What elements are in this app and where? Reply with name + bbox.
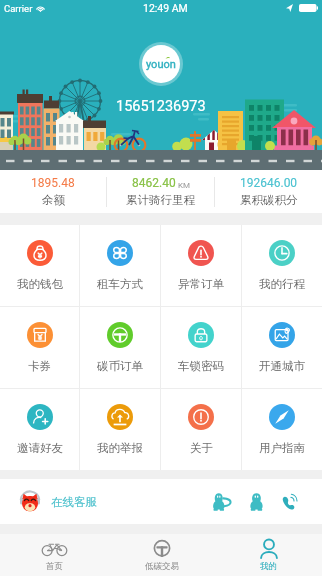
button[interactable]: 我的钱包 [0, 225, 79, 306]
button[interactable]: 1895.48 [0, 176, 106, 207]
button[interactable]: 在线客服 [20, 490, 97, 513]
button[interactable]: 我的举报 [80, 389, 160, 470]
button[interactable]: 8462.40 [107, 176, 214, 207]
staticText: 邀请好友 [17, 441, 63, 455]
staticText: 我的行程 [259, 277, 305, 291]
staticText: 在线客服 [51, 495, 97, 509]
staticText: 首页 [46, 561, 63, 572]
button[interactable]: Call [281, 492, 301, 512]
staticText: 累计骑行里程 [126, 193, 195, 207]
button[interactable]: QQ [248, 493, 265, 511]
button[interactable]: 车锁密码 [161, 307, 241, 388]
staticText: 192646.00 [240, 176, 298, 190]
button[interactable]: 192646.00 [215, 176, 322, 207]
button[interactable]: 用户指南 [242, 389, 322, 470]
button[interactable]: 我的行程 [242, 225, 322, 306]
button[interactable]: QQ group [211, 493, 232, 511]
staticText: 累积碳积分 [240, 193, 298, 207]
staticText: 我的 [260, 561, 277, 572]
staticText: 租车方式 [97, 277, 143, 291]
button[interactable]: 碳币订单 [80, 307, 160, 388]
staticText: 12:49 AM [143, 2, 188, 14]
staticText: 开通城市 [259, 359, 305, 373]
staticText: 1895.48 [31, 176, 75, 190]
staticText: 余额 [42, 193, 65, 207]
button[interactable]: 开通城市 [242, 307, 322, 388]
staticText: 异常订单 [178, 277, 224, 291]
staticText: KM [176, 181, 190, 190]
button[interactable]: 首页 [0, 534, 108, 576]
staticText: 15651236973 [116, 98, 206, 115]
button[interactable]: 低碳交易 [108, 534, 215, 576]
staticText: 用户指南 [259, 441, 305, 455]
button[interactable]: 卡券 [0, 307, 79, 388]
staticText: 卡券 [28, 359, 51, 373]
staticText: Carrier [4, 3, 33, 14]
staticText: 低碳交易 [145, 561, 179, 572]
button[interactable]: 邀请好友 [0, 389, 79, 470]
staticText: 车锁密码 [178, 359, 224, 373]
staticText: 我的举报 [97, 441, 143, 455]
button[interactable]: 关于 [161, 389, 241, 470]
button[interactable]: 异常订单 [161, 225, 241, 306]
staticText: youon [146, 58, 176, 71]
button[interactable]: 租车方式 [80, 225, 160, 306]
staticText: 8462.40 [132, 176, 176, 190]
staticText: 关于 [190, 441, 213, 455]
staticText: 碳币订单 [97, 359, 143, 373]
button[interactable]: 我的 [215, 534, 322, 576]
staticText: 我的钱包 [17, 277, 63, 291]
